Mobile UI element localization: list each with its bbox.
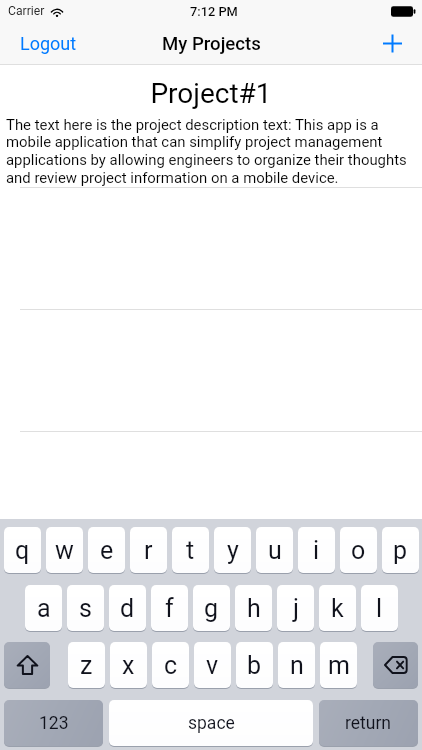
staticText: r [144, 536, 153, 565]
staticText: i [313, 536, 320, 565]
staticText: l [376, 594, 383, 623]
staticText: y [227, 536, 239, 565]
staticText: a [37, 594, 51, 623]
staticText: The text here is the project description… [6, 116, 410, 187]
button[interactable]: r [130, 527, 167, 573]
staticText: h [247, 594, 261, 623]
staticText: 7:12 PM [190, 4, 238, 19]
staticText: Project#1 [0, 77, 422, 110]
button[interactable]: Shift [4, 642, 50, 688]
staticText: 123 [39, 713, 69, 734]
staticText: s [79, 594, 92, 623]
staticText: v [206, 651, 219, 680]
button[interactable]: w [46, 527, 83, 573]
staticText: o [351, 536, 366, 565]
button[interactable]: g [193, 585, 230, 631]
staticText: Logout [20, 33, 77, 54]
button[interactable]: z [68, 642, 105, 688]
button[interactable]: d [109, 585, 146, 631]
staticText: My Projects [162, 33, 261, 55]
staticText: x [122, 651, 135, 680]
staticText: Carrier [8, 4, 45, 18]
staticText: e [100, 536, 114, 565]
button[interactable]: space [109, 700, 313, 746]
button[interactable]: v [194, 642, 231, 688]
staticText: k [331, 594, 344, 623]
staticText: u [268, 536, 282, 565]
staticText: t [186, 536, 195, 565]
staticText: z [80, 651, 93, 680]
button[interactable]: e [88, 527, 125, 573]
button[interactable]: j [277, 585, 314, 631]
staticText: j [293, 594, 299, 623]
staticText: n [290, 651, 304, 680]
staticText: q [15, 536, 30, 565]
button[interactable]: b [236, 642, 273, 688]
button[interactable]: t [172, 527, 209, 573]
staticText: g [204, 594, 219, 623]
staticText: p [393, 536, 408, 565]
button[interactable]: c [152, 642, 189, 688]
staticText: b [247, 651, 262, 680]
button[interactable]: u [256, 527, 293, 573]
button[interactable]: i [298, 527, 335, 573]
button[interactable]: y [214, 527, 251, 573]
button[interactable]: x [110, 642, 147, 688]
staticText: m [328, 651, 350, 680]
staticText: return [345, 713, 392, 734]
staticText: w [55, 536, 74, 565]
staticText: c [164, 651, 178, 680]
staticText: space [188, 713, 235, 734]
button[interactable]: q [4, 527, 41, 573]
button[interactable]: f [151, 585, 188, 631]
button[interactable]: Logout [0, 24, 97, 63]
button[interactable]: h [235, 585, 272, 631]
button[interactable]: o [340, 527, 377, 573]
button[interactable]: l [361, 585, 398, 631]
button[interactable]: return [319, 700, 418, 746]
button[interactable]: Add project [369, 25, 422, 62]
staticText: d [120, 594, 135, 623]
button[interactable]: n [278, 642, 315, 688]
button[interactable]: m [320, 642, 357, 688]
button[interactable]: Backspace [373, 642, 418, 688]
button[interactable]: k [319, 585, 356, 631]
staticText: f [165, 594, 174, 623]
button[interactable]: 123 [4, 700, 103, 746]
button[interactable]: s [67, 585, 104, 631]
button[interactable]: p [382, 527, 419, 573]
button[interactable]: a [25, 585, 62, 631]
